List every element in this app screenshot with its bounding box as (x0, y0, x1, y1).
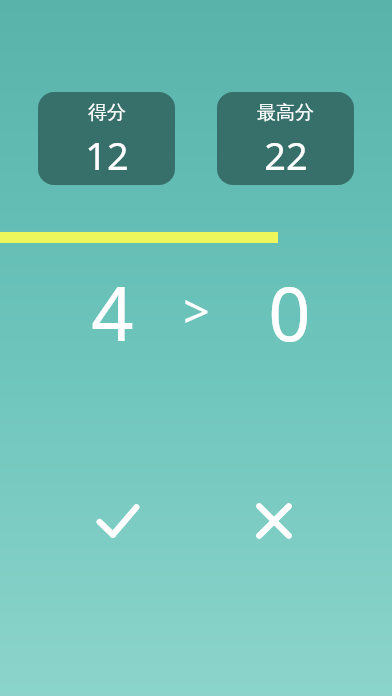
staticText: 12 (85, 129, 129, 181)
staticText: 0 (268, 262, 311, 362)
button[interactable]: 最高分 (217, 92, 354, 185)
staticText: 22 (264, 129, 308, 181)
staticText: 4 (91, 262, 134, 362)
button[interactable]: 得分 (38, 92, 175, 185)
button[interactable]: Correct (84, 488, 152, 554)
staticText: 得分 (88, 101, 126, 125)
staticText: > (183, 279, 210, 342)
button[interactable]: Wrong (240, 488, 308, 554)
staticText: 最高分 (257, 101, 314, 125)
